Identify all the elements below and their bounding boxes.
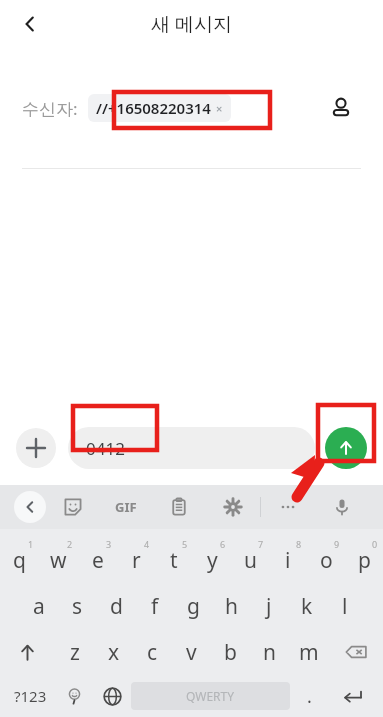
staticText: GIF xyxy=(115,498,137,516)
staticText: 9 xyxy=(334,538,340,550)
button[interactable]: Contacts xyxy=(321,88,361,128)
button[interactable]: Back xyxy=(10,4,50,44)
button[interactable]: l xyxy=(326,583,364,629)
button[interactable]: s xyxy=(58,583,97,629)
button[interactable]: y xyxy=(193,537,231,583)
button[interactable]: Keyboard tool xyxy=(99,485,152,529)
staticText: h xyxy=(225,592,238,621)
button[interactable]: Keyboard tool xyxy=(46,485,99,529)
button[interactable]: 0412 xyxy=(68,427,315,469)
button[interactable]: z xyxy=(55,629,94,675)
button[interactable]: c xyxy=(133,629,172,675)
button[interactable]: Keyboard tool xyxy=(261,485,315,529)
button[interactable]: k xyxy=(288,583,326,629)
button[interactable]: v xyxy=(172,629,211,675)
staticText: ?123 xyxy=(14,686,47,706)
button[interactable]: n xyxy=(250,629,289,675)
staticText: 2 xyxy=(67,538,73,550)
staticText: u xyxy=(244,546,257,575)
staticText: QWERTY xyxy=(186,688,235,704)
button[interactable]: o xyxy=(307,537,345,583)
button[interactable]: Shift xyxy=(0,629,55,675)
button[interactable]: Emoji xyxy=(55,675,93,717)
button[interactable]: Enter xyxy=(328,675,377,717)
staticText: 7 xyxy=(258,538,264,550)
button[interactable]: e xyxy=(78,537,117,583)
staticText: 5 xyxy=(182,538,188,550)
staticText: w xyxy=(50,546,67,575)
staticText: j xyxy=(266,592,272,621)
staticText: × xyxy=(216,101,223,116)
staticText: t xyxy=(170,546,178,575)
staticText: l xyxy=(342,592,348,621)
button[interactable]: x xyxy=(94,629,133,675)
staticText: x xyxy=(108,638,120,667)
button[interactable]: q xyxy=(0,537,39,583)
staticText: v xyxy=(186,638,197,667)
button[interactable]: g xyxy=(174,583,212,629)
staticText: d xyxy=(110,592,123,621)
button[interactable]: Keyboard tool xyxy=(152,485,206,529)
button[interactable]: Backspace xyxy=(328,629,383,675)
button[interactable]: u xyxy=(231,537,269,583)
staticText: i xyxy=(285,546,291,575)
staticText: e xyxy=(92,546,104,575)
button[interactable]: Close toolbar xyxy=(14,491,46,523)
staticText: 수신자: xyxy=(22,97,78,120)
staticText: z xyxy=(70,638,80,667)
staticText: m xyxy=(299,638,319,667)
staticText: 0412 xyxy=(86,437,125,460)
button[interactable]: i xyxy=(269,537,307,583)
staticText: . xyxy=(307,684,312,709)
staticText: f xyxy=(151,592,159,621)
button[interactable]: QWERTY xyxy=(131,682,290,710)
button[interactable]: m xyxy=(289,629,328,675)
button[interactable]: h xyxy=(212,583,250,629)
button[interactable]: Keyboard tool xyxy=(206,485,260,529)
button[interactable]: . xyxy=(290,675,328,717)
button[interactable]: b xyxy=(211,629,250,675)
staticText: c xyxy=(147,638,158,667)
staticText: 1 xyxy=(28,538,34,550)
button[interactable]: Change language xyxy=(93,675,131,717)
staticText: 6 xyxy=(220,538,226,550)
staticText: q xyxy=(13,546,26,575)
button[interactable]: ?123 xyxy=(6,675,55,717)
staticText: b xyxy=(224,638,237,667)
button[interactable]: p xyxy=(345,537,383,583)
button[interactable]: Send xyxy=(325,427,367,469)
staticText: r xyxy=(132,546,141,575)
staticText: 새 메시지 xyxy=(151,11,232,37)
staticText: 4 xyxy=(144,538,150,550)
button[interactable]: w xyxy=(39,537,78,583)
button[interactable]: Add attachment xyxy=(16,428,56,468)
button[interactable]: Keyboard tool xyxy=(315,485,369,529)
button[interactable]: //+16508220314 xyxy=(88,94,231,122)
button[interactable]: d xyxy=(97,583,136,629)
button[interactable]: r xyxy=(117,537,155,583)
button[interactable]: a xyxy=(19,583,58,629)
staticText: p xyxy=(358,546,371,575)
staticText: 3 xyxy=(106,538,112,550)
staticText: s xyxy=(72,592,83,621)
staticText: //+16508220314 xyxy=(96,98,211,118)
staticText: o xyxy=(320,546,333,575)
staticText: 0 xyxy=(372,538,378,550)
staticText: k xyxy=(301,592,313,621)
button[interactable]: t xyxy=(155,537,193,583)
staticText: g xyxy=(187,592,200,621)
staticText: y xyxy=(207,546,218,575)
button[interactable]: j xyxy=(250,583,288,629)
staticText: n xyxy=(263,638,276,667)
button[interactable]: f xyxy=(136,583,174,629)
staticText: a xyxy=(33,592,45,621)
staticText: 8 xyxy=(296,538,302,550)
